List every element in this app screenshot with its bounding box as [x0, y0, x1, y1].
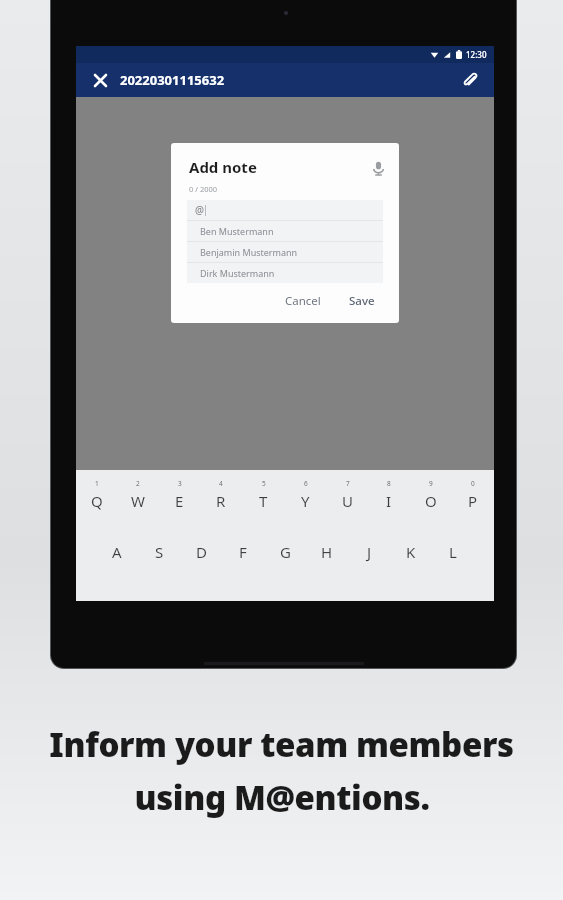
staticText: O: [425, 491, 437, 511]
staticText: @: [195, 203, 204, 217]
button[interactable]: Save: [345, 289, 379, 313]
staticText: Y: [301, 491, 310, 511]
staticText: J: [367, 542, 372, 562]
button[interactable]: Attach file: [456, 66, 484, 94]
staticText: using M@entions.: [134, 775, 430, 820]
button[interactable]: 9: [410, 479, 452, 523]
button[interactable]: L: [432, 535, 474, 569]
staticText: 8: [387, 479, 391, 488]
staticText: 12:30: [466, 49, 487, 60]
staticText: F: [239, 542, 247, 562]
button[interactable]: A: [96, 535, 138, 569]
staticText: G: [280, 542, 291, 562]
staticText: A: [112, 542, 122, 562]
button[interactable]: H: [306, 535, 348, 569]
button[interactable]: D: [180, 535, 222, 569]
button[interactable]: 6: [284, 479, 326, 523]
staticText: E: [175, 491, 184, 511]
button[interactable]: Benjamin Mustermann: [187, 242, 383, 262]
button[interactable]: G: [264, 535, 306, 569]
staticText: 4: [219, 479, 223, 488]
button[interactable]: S: [138, 535, 180, 569]
staticText: S: [155, 542, 164, 562]
staticText: 0 / 2000: [189, 184, 218, 194]
button[interactable]: 4: [200, 479, 242, 523]
staticText: 7: [346, 479, 350, 488]
button[interactable]: 1: [76, 479, 117, 523]
staticText: 3: [178, 479, 182, 488]
staticText: D: [196, 542, 207, 562]
staticText: 5: [262, 479, 266, 488]
staticText: I: [386, 491, 392, 511]
staticText: 9: [429, 479, 433, 488]
button[interactable]: 3: [158, 479, 200, 523]
button[interactable]: 2: [117, 479, 158, 523]
staticText: Inform your team members: [49, 722, 514, 767]
staticText: K: [406, 542, 416, 562]
staticText: R: [216, 491, 226, 511]
button[interactable]: F: [222, 535, 264, 569]
button[interactable]: K: [390, 535, 432, 569]
staticText: 2: [136, 479, 140, 488]
button[interactable]: J: [348, 535, 390, 569]
staticText: Save: [349, 293, 375, 309]
staticText: H: [321, 542, 333, 562]
button[interactable]: 7: [326, 479, 368, 523]
button[interactable]: Dirk Mustermann: [187, 263, 383, 283]
staticText: T: [259, 491, 268, 511]
button[interactable]: 5: [242, 479, 284, 523]
staticText: 0: [471, 479, 475, 488]
button[interactable]: Close: [87, 67, 113, 93]
button[interactable]: Ben Mustermann: [187, 221, 383, 241]
button[interactable]: 8: [368, 479, 410, 523]
staticText: Cancel: [285, 293, 321, 309]
button[interactable]: 0: [452, 479, 494, 523]
staticText: 20220301115632: [120, 71, 225, 89]
staticText: L: [449, 542, 457, 562]
button[interactable]: Cancel: [277, 289, 329, 313]
staticText: 6: [304, 479, 308, 488]
staticText: P: [468, 491, 478, 511]
staticText: Q: [91, 491, 103, 511]
staticText: Dirk Mustermann: [200, 267, 275, 279]
staticText: Add note: [189, 157, 257, 177]
staticText: W: [131, 491, 145, 511]
button[interactable]: Voice input: [367, 157, 389, 179]
staticText: U: [342, 491, 353, 511]
staticText: Ben Mustermann: [200, 225, 274, 237]
staticText: Benjamin Mustermann: [200, 246, 298, 258]
staticText: 1: [95, 479, 99, 488]
